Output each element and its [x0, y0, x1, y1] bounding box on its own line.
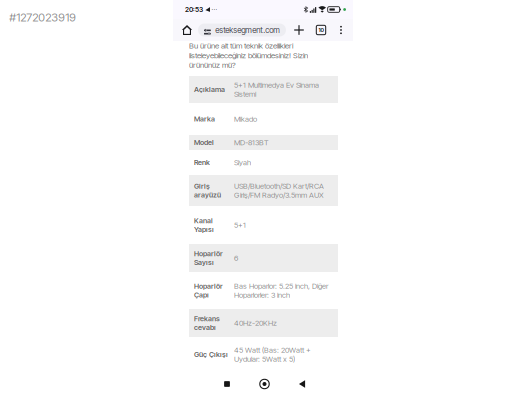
button[interactable]: Home	[180, 19, 194, 41]
staticText: Açıklama	[194, 85, 225, 94]
staticText: Hoparlör Çapı	[194, 282, 223, 299]
button[interactable]: New tab	[292, 19, 306, 41]
staticText: 5+1 Multimedya Ev Sinama Sistemi	[234, 80, 319, 99]
button[interactable]: More options	[336, 19, 346, 41]
button[interactable]: Tabs	[314, 19, 328, 41]
staticText: Bu ürüne ait tüm teknik özellikleri list…	[189, 41, 308, 70]
staticText: Renk	[194, 158, 210, 167]
staticText: Hoparlör Sayısı	[194, 249, 223, 267]
staticText: ···	[211, 5, 217, 14]
staticText: Kanal Yapısı	[194, 216, 214, 234]
staticText: Bas Hoparlor: 5.25 inch, Diğer Hoparlorl…	[234, 281, 328, 300]
staticText: Model	[194, 138, 214, 147]
staticText: Marka	[194, 115, 215, 123]
staticText: Giriş arayüzü	[194, 182, 221, 199]
staticText: Güç Çıkışı	[194, 350, 228, 359]
staticText: 5+1	[234, 220, 246, 230]
staticText: 6	[234, 253, 238, 263]
button[interactable]: Back	[292, 377, 312, 391]
staticText: USB/Bluetooth/SD Kart/RCA Giriş/FM Radyo…	[234, 181, 324, 200]
staticText: Mikado	[234, 114, 257, 124]
staticText: MD-813BT	[234, 138, 269, 147]
staticText: Siyah	[234, 158, 251, 167]
button[interactable]: Home	[254, 377, 274, 391]
staticText: 40Hz-20KHz	[234, 318, 277, 328]
button[interactable]: esteksegment.com	[198, 23, 286, 36]
button[interactable]: Recent apps	[217, 377, 237, 391]
staticText: Frekans cevabı	[194, 314, 220, 332]
staticText: 45 Watt (Bas: 20Watt + Uydular: 5Watt x …	[234, 345, 311, 364]
staticText: 10	[318, 27, 323, 33]
staticText: esteksegment.com	[215, 25, 280, 35]
staticText: 20:53	[185, 5, 203, 14]
staticText: #1272023919	[9, 10, 76, 24]
